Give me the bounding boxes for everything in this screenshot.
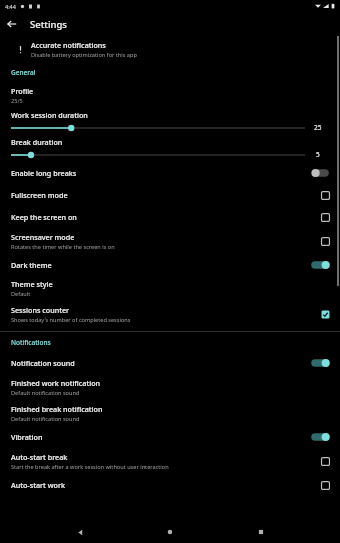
staticText: Break duration bbox=[11, 137, 63, 147]
button[interactable]: Work session duration bbox=[0, 108, 340, 135]
staticText: Auto-start break bbox=[11, 452, 68, 462]
button[interactable]: Screensaver mode bbox=[0, 228, 340, 254]
staticText: Notification sound bbox=[11, 358, 75, 368]
staticText: Default notification sound bbox=[11, 415, 80, 423]
button[interactable]: Fullscreen mode bbox=[0, 184, 340, 206]
button[interactable]: Theme style bbox=[0, 276, 340, 301]
staticText: Screensaver mode bbox=[11, 232, 75, 242]
button[interactable]: Notification sound bbox=[0, 352, 340, 374]
staticText: Sessions counter bbox=[11, 305, 70, 315]
button[interactable]: Enable long breaks bbox=[0, 162, 340, 184]
button[interactable]: Recents bbox=[250, 521, 272, 543]
staticText: Accurate notifications bbox=[31, 40, 106, 50]
staticText: Settings bbox=[30, 18, 67, 31]
button[interactable]: Home bbox=[159, 521, 181, 543]
staticText: Enable long breaks bbox=[11, 168, 77, 178]
staticText: Work session duration bbox=[11, 110, 88, 120]
staticText: Profile bbox=[11, 86, 34, 96]
button[interactable]: Auto-start break bbox=[0, 448, 340, 474]
button[interactable]: Dark theme bbox=[0, 254, 340, 276]
button[interactable]: Profile bbox=[0, 82, 340, 108]
button[interactable]: Finished break notification bbox=[0, 400, 340, 426]
staticText: Default bbox=[11, 290, 31, 298]
staticText: Theme style bbox=[11, 279, 53, 289]
staticText: Start the break after a work session wit… bbox=[11, 463, 169, 471]
button[interactable]: Accurate notifications bbox=[0, 36, 340, 62]
staticText: 4:44 bbox=[5, 3, 16, 10]
staticText: Shows today's number of completed sessio… bbox=[11, 316, 131, 324]
staticText: Fullscreen mode bbox=[11, 190, 68, 200]
staticText: Keep the screen on bbox=[11, 212, 77, 222]
staticText: General bbox=[11, 68, 36, 77]
staticText: Dark theme bbox=[11, 260, 52, 270]
button[interactable]: Vibration bbox=[0, 426, 340, 448]
button[interactable]: Break duration bbox=[0, 135, 340, 162]
staticText: Rotates the timer while the screen is on bbox=[11, 243, 115, 251]
staticText: Notifications bbox=[11, 338, 51, 347]
staticText: 25 bbox=[314, 123, 322, 132]
staticText: Disable battery optimization for this ap… bbox=[31, 51, 137, 59]
staticText: 5 bbox=[316, 150, 320, 159]
staticText: Default notification sound bbox=[11, 389, 80, 397]
staticText: Auto-start work bbox=[11, 480, 65, 490]
button[interactable]: Keep the screen on bbox=[0, 206, 340, 228]
staticText: Finished break notification bbox=[11, 404, 103, 414]
button[interactable]: Back bbox=[69, 521, 91, 543]
staticText: Finished work notification bbox=[11, 378, 101, 388]
button[interactable]: Auto-start work bbox=[0, 474, 340, 496]
button[interactable]: Finished work notification bbox=[0, 374, 340, 400]
button[interactable]: Back bbox=[0, 12, 24, 36]
staticText: 25/5 bbox=[11, 97, 23, 105]
staticText: Vibration bbox=[11, 432, 43, 442]
button[interactable]: Sessions counter bbox=[0, 301, 340, 327]
